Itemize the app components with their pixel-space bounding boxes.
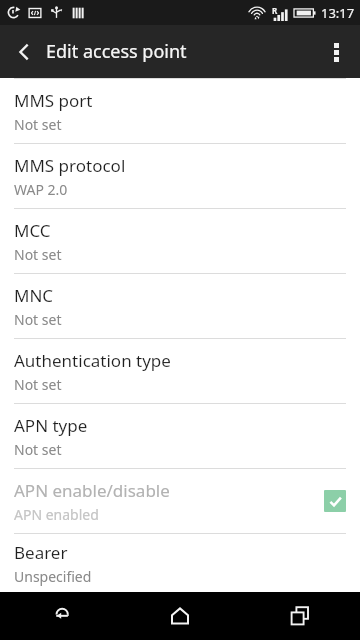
staticText: 13:17 (321, 4, 355, 22)
button[interactable]: Home (120, 592, 240, 640)
button[interactable]: MCC (0, 209, 360, 273)
staticText: Not set (14, 115, 62, 134)
staticText: APN enable/disable (14, 479, 170, 502)
staticText: WAP 2.0 (14, 180, 68, 199)
button[interactable]: Authentication type (0, 339, 360, 403)
staticText: Unspecified (14, 567, 92, 586)
button[interactable]: More options (312, 28, 360, 76)
button[interactable]: APN enabled checkbox (324, 490, 346, 512)
button[interactable]: MMS port (0, 79, 360, 143)
staticText: Not set (14, 245, 62, 264)
staticText: MNC (14, 284, 54, 307)
staticText: MCC (14, 219, 51, 242)
staticText: Not set (14, 310, 62, 329)
button[interactable]: MNC (0, 274, 360, 338)
staticText: APN enabled (14, 505, 99, 524)
button[interactable]: APN type (0, 404, 360, 468)
staticText: R (272, 5, 278, 16)
button[interactable]: APN enable/disable (0, 469, 360, 533)
staticText: MMS port (14, 89, 93, 112)
staticText: APN type (14, 414, 88, 437)
staticText: Not set (14, 375, 62, 394)
staticText: Authentication type (14, 349, 171, 372)
button[interactable]: Back (0, 592, 120, 640)
button[interactable]: Back (0, 28, 48, 76)
staticText: Edit access point (46, 39, 187, 64)
staticText: Not set (14, 440, 62, 459)
button[interactable]: Recent apps (240, 592, 360, 640)
staticText: Bearer (14, 541, 68, 564)
staticText: MMS protocol (14, 154, 126, 177)
button[interactable]: Bearer (0, 534, 360, 592)
button[interactable]: MMS protocol (0, 144, 360, 208)
